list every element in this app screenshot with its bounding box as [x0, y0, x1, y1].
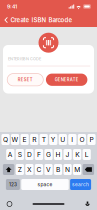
button[interactable]: Delete — [83, 164, 94, 175]
staticText: U — [60, 135, 65, 144]
button[interactable]: E — [20, 134, 29, 145]
staticText: search — [72, 182, 89, 187]
staticText: O — [79, 135, 84, 144]
button[interactable]: K — [73, 149, 81, 160]
staticText: E — [23, 135, 27, 144]
staticText: N — [65, 165, 70, 174]
button[interactable]: L — [83, 149, 91, 160]
button[interactable]: H — [54, 149, 62, 160]
button[interactable]: R — [30, 134, 38, 145]
button[interactable]: space — [21, 179, 69, 190]
button[interactable]: Shift — [3, 164, 14, 175]
staticText: F — [37, 150, 41, 159]
staticText: V — [46, 165, 51, 174]
button[interactable]: GENERATE — [46, 74, 87, 86]
button[interactable]: Z — [16, 164, 24, 175]
button[interactable]: X — [25, 164, 33, 175]
staticText: T — [42, 135, 46, 144]
staticText: L — [85, 150, 89, 159]
button[interactable]: Y — [49, 134, 57, 145]
staticText: G — [46, 150, 51, 159]
staticText: GENERATE — [55, 77, 79, 82]
button[interactable]: T — [40, 134, 48, 145]
button[interactable]: G — [44, 149, 53, 160]
staticText: S — [18, 150, 22, 159]
button[interactable]: 123 — [6, 179, 20, 190]
staticText: P — [89, 135, 93, 144]
staticText: space — [37, 182, 52, 187]
button[interactable]: B — [54, 164, 62, 175]
button[interactable]: V — [44, 164, 53, 175]
button[interactable]: U — [59, 134, 67, 145]
staticText: C — [36, 165, 41, 174]
button[interactable]: Emoji — [5, 199, 14, 208]
button[interactable]: O — [78, 134, 86, 145]
button[interactable]: W — [11, 134, 19, 145]
staticText: X — [27, 165, 32, 174]
button[interactable]: D — [25, 149, 33, 160]
button[interactable]: A — [6, 149, 14, 160]
button[interactable]: I — [68, 134, 76, 145]
staticText: M — [74, 165, 80, 174]
staticText: I — [71, 135, 73, 144]
button[interactable]: F — [35, 149, 43, 160]
staticText: ENTER ISBN CODE — [8, 57, 41, 61]
staticText: 9:41 — [7, 3, 17, 10]
staticText: Z — [18, 165, 22, 174]
button[interactable]: C — [35, 164, 43, 175]
button[interactable]: P — [87, 134, 96, 145]
button[interactable]: S — [16, 149, 24, 160]
button[interactable]: J — [63, 149, 72, 160]
staticText: B — [56, 165, 60, 174]
staticText: H — [55, 150, 60, 159]
button[interactable]: M — [73, 164, 81, 175]
staticText: RESET — [18, 77, 33, 82]
staticText: Y — [51, 135, 56, 144]
staticText: J — [66, 150, 70, 159]
staticText: K — [75, 150, 79, 159]
staticText: A — [8, 150, 13, 159]
button[interactable]: RESET — [7, 74, 43, 86]
button[interactable]: Back — [0, 14, 10, 26]
button[interactable]: N — [63, 164, 72, 175]
staticText: W — [12, 135, 19, 144]
staticText: Create ISBN Barcode — [10, 16, 72, 24]
staticText: R — [32, 135, 36, 144]
button[interactable]: Dictate — [83, 199, 92, 209]
button[interactable]: Q — [1, 134, 10, 145]
staticText: Q — [3, 135, 8, 144]
staticText: D — [27, 150, 32, 159]
staticText: 123 — [9, 182, 17, 187]
button[interactable]: search — [70, 179, 91, 190]
